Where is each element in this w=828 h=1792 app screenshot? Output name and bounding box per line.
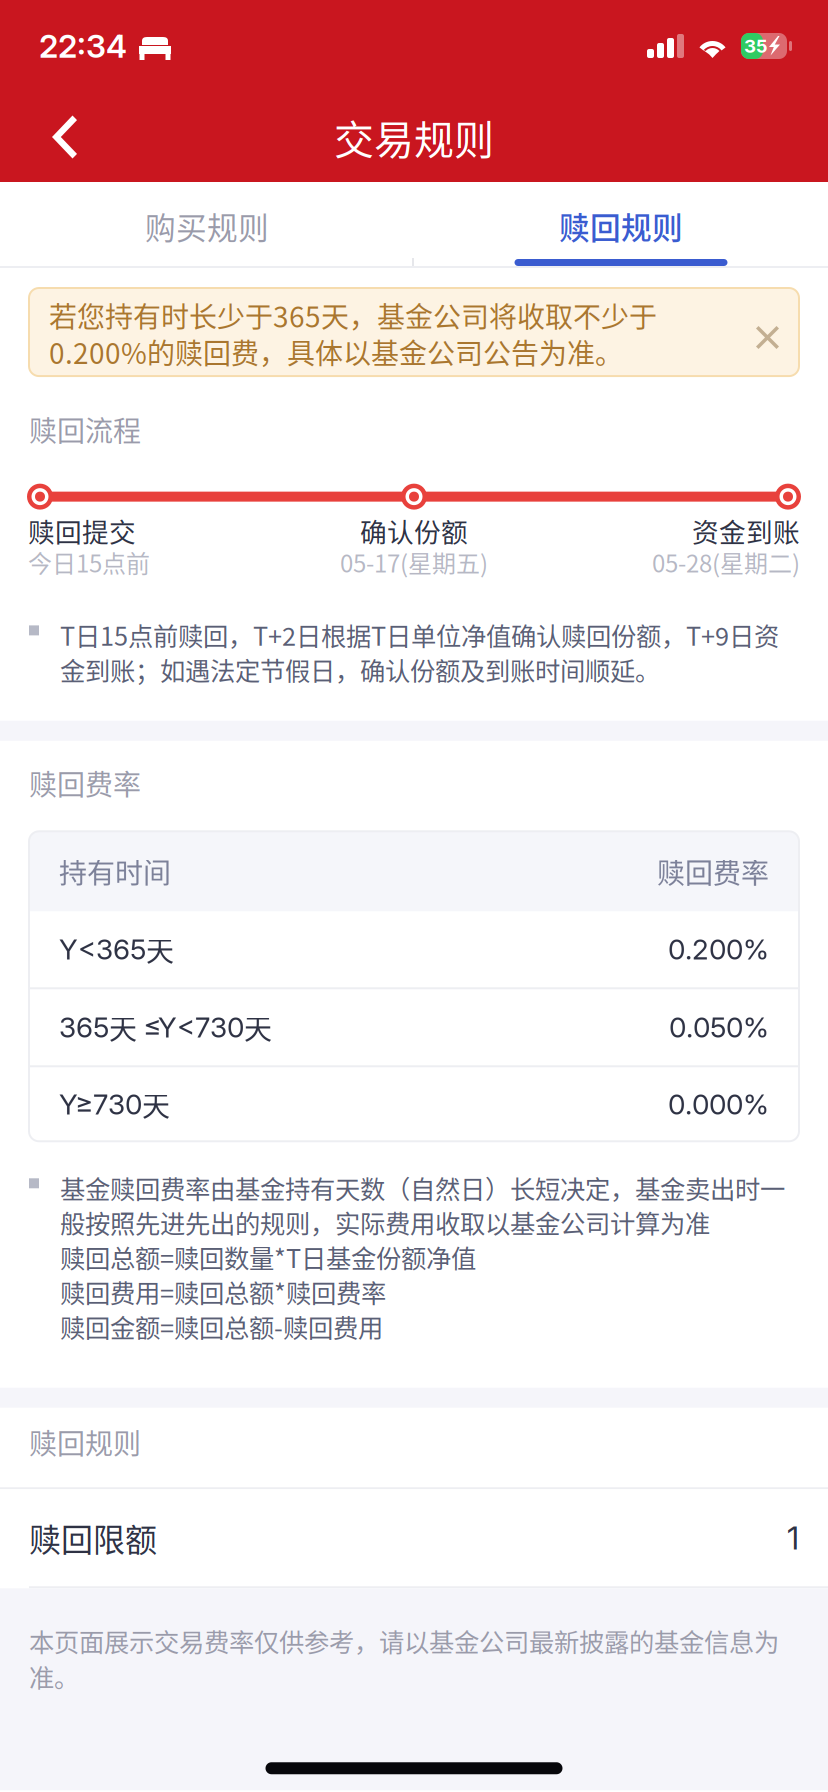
staticText: 05-28(星期二)	[652, 545, 800, 579]
staticText: 0.050%	[669, 1010, 769, 1044]
staticText: 天	[142, 1084, 170, 1124]
staticText: 本页面展示交易费率仅供参考，请以基金公司最新披露的基金信息为准。	[29, 1622, 779, 1695]
button[interactable]: 赎回规则	[414, 182, 828, 266]
staticText: T日15点前赎回，T+2日根据T日单位净值确认赎回份额，T+9日资金到账；如遇法…	[60, 616, 779, 688]
staticText: 天	[109, 1007, 143, 1047]
staticText: 基金赎回费率由基金持有天数（自然日）长短决定，基金卖出时一般按照先进先出的规则，…	[60, 1169, 785, 1345]
staticText: 购买规则	[145, 204, 269, 248]
staticText: 赎回限额	[29, 1515, 157, 1561]
staticText: 365	[59, 1010, 109, 1044]
staticText: 赎回费率	[657, 851, 769, 891]
staticText: 交易规则	[334, 108, 494, 166]
staticText: 天	[146, 929, 174, 969]
staticText: ≤Y<730	[143, 1010, 244, 1044]
staticText: 05-17(星期五)	[340, 545, 488, 579]
button[interactable]: Close	[756, 295, 787, 349]
staticText: 赎回流程	[29, 409, 141, 450]
staticText: Y<365	[59, 932, 146, 966]
staticText: 0.000%	[668, 1087, 769, 1121]
staticText: 天	[244, 1007, 272, 1047]
staticText: 赎回规则	[559, 204, 683, 248]
button[interactable]: 赎回限额	[0, 1489, 828, 1586]
staticText: 0.200%	[668, 932, 769, 966]
staticText: 1	[787, 1518, 799, 1557]
staticText: 赎回提交	[28, 511, 136, 550]
staticText: 22:34	[39, 27, 127, 65]
staticText: 确认份额	[360, 511, 468, 550]
button[interactable]: Back	[0, 92, 101, 181]
button[interactable]: 购买规则	[0, 182, 414, 266]
staticText: 赎回规则	[29, 1422, 141, 1462]
staticText: Y≥730	[59, 1087, 142, 1121]
staticText: 今日15点前	[28, 545, 150, 579]
staticText: 赎回费率	[29, 763, 141, 803]
staticText: 持有时间	[59, 851, 171, 891]
staticText: 35	[744, 35, 768, 57]
staticText: 若您持有时长少于365天，基金公司将收取不少于0.200%的赎回费，具体以基金公…	[49, 295, 657, 372]
staticText: 资金到账	[692, 511, 800, 550]
